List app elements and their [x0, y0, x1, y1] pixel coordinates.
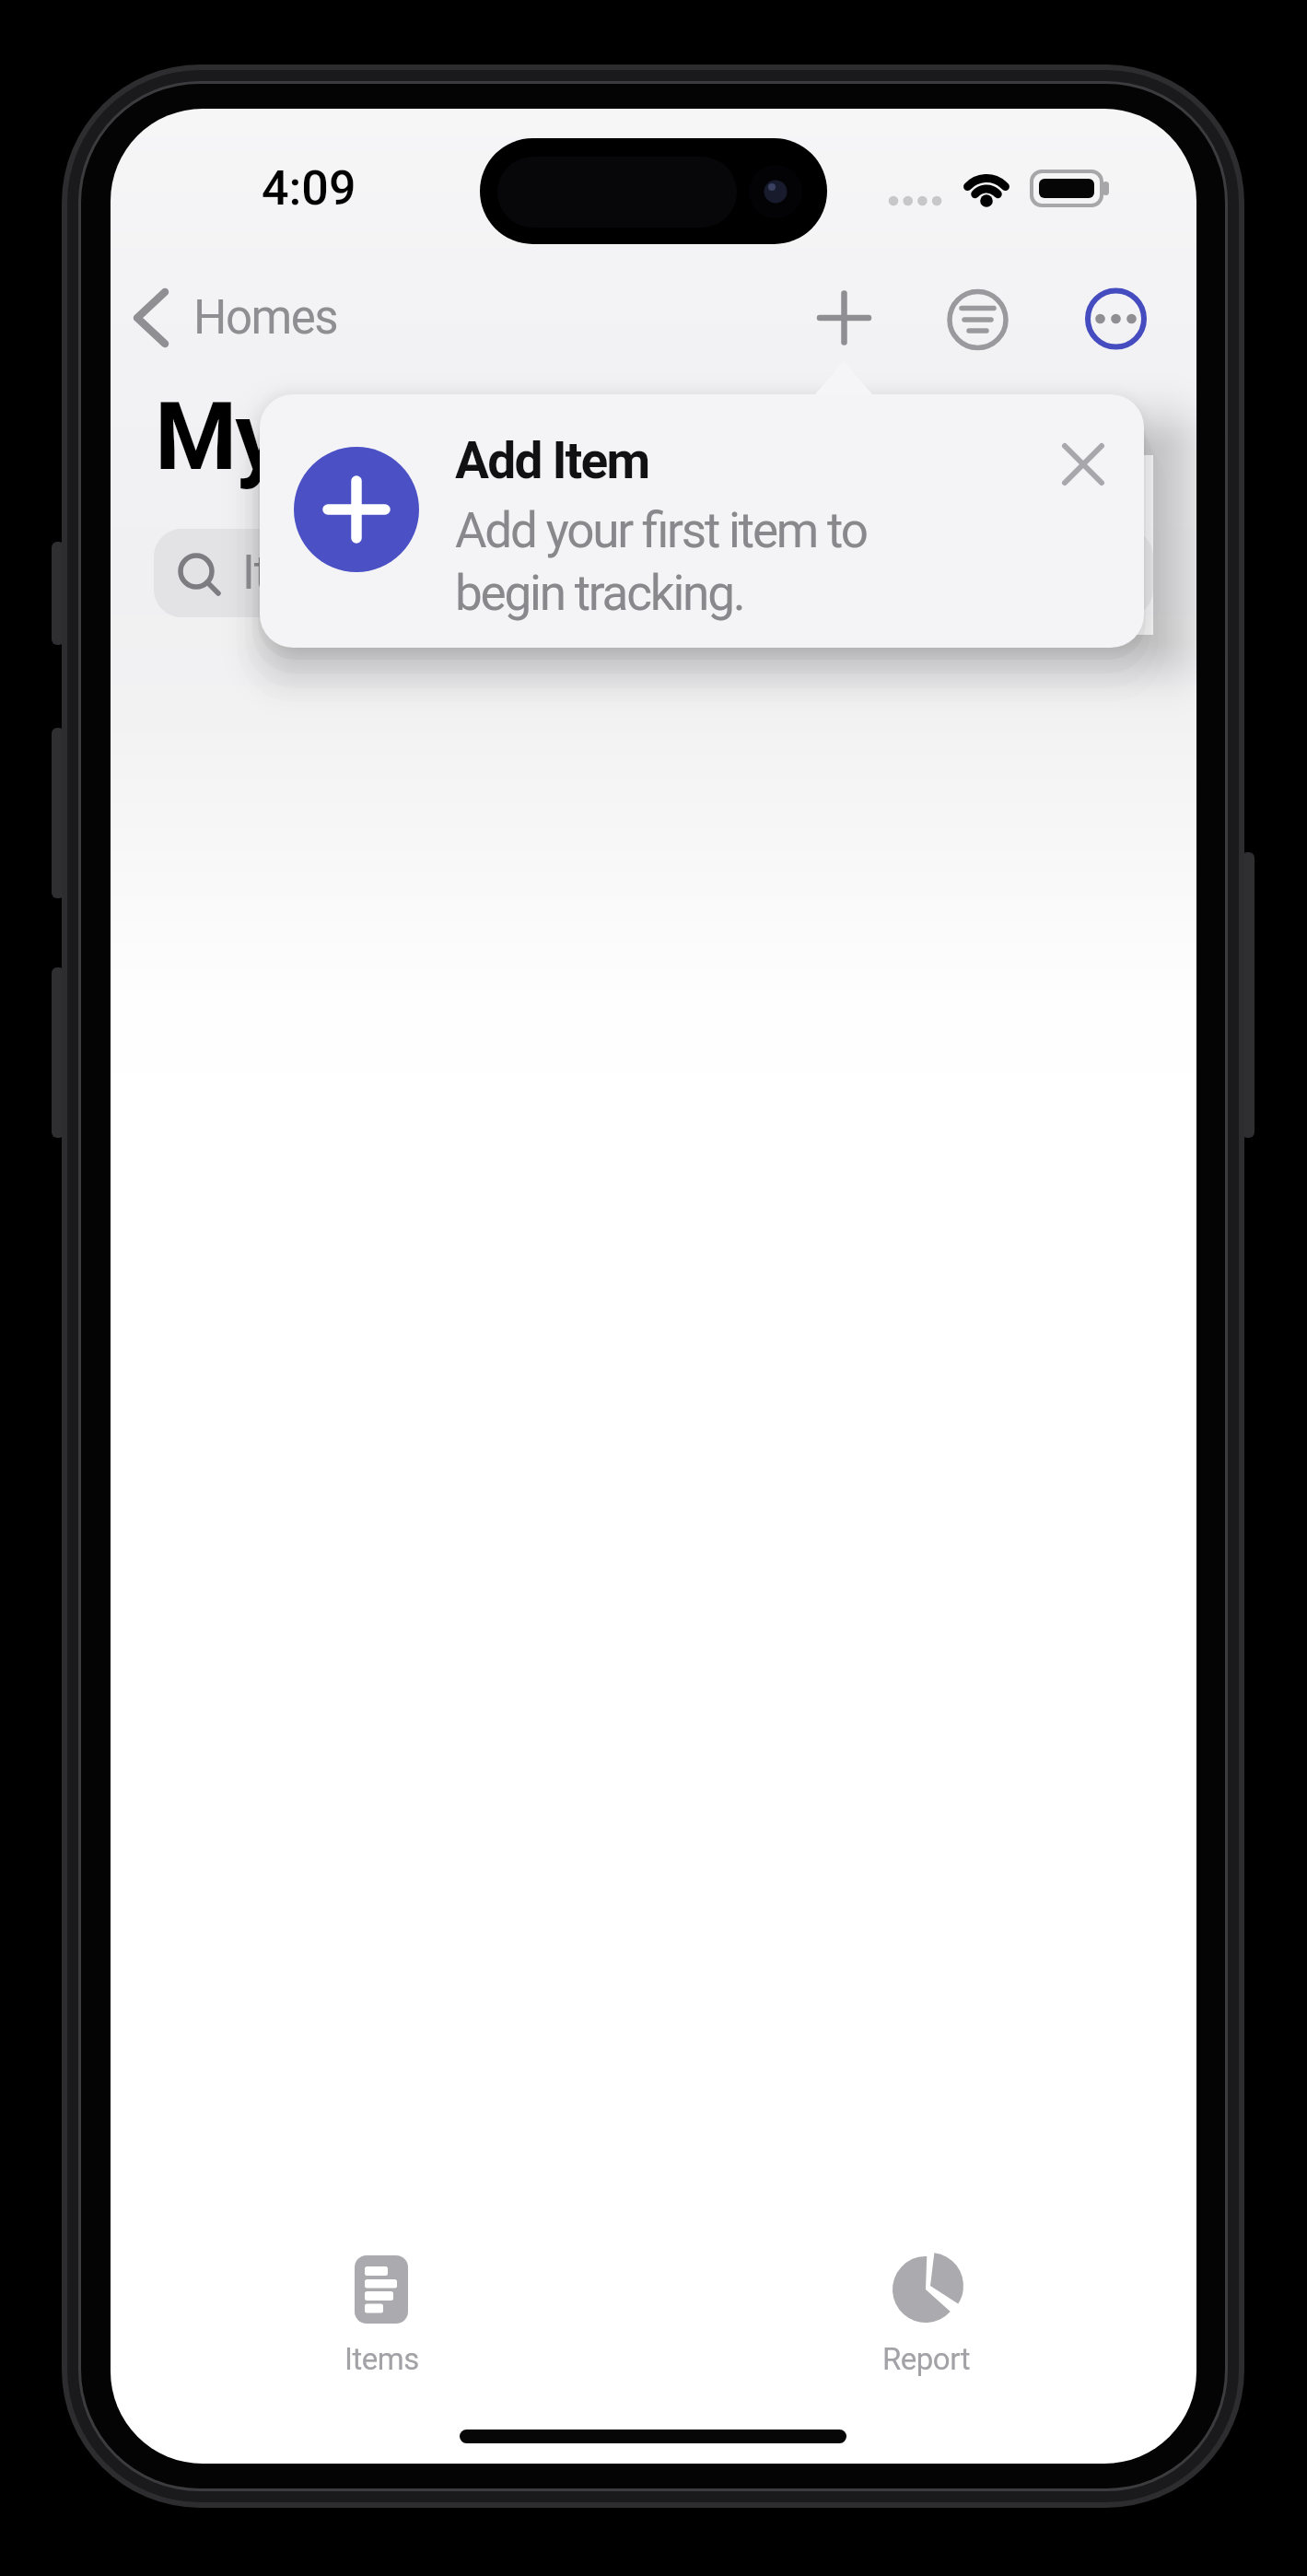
- staticText: 4:09: [262, 160, 356, 216]
- button[interactable]: [260, 394, 1144, 648]
- button[interactable]: [1056, 437, 1111, 492]
- button[interactable]: Items: [308, 2248, 455, 2377]
- staticText: Report: [882, 2341, 970, 2377]
- staticText: Homes: [193, 290, 338, 345]
- button[interactable]: Report: [852, 2248, 999, 2377]
- staticText: Items: [242, 545, 356, 601]
- staticText: My Home: [155, 381, 547, 492]
- button[interactable]: [1080, 284, 1151, 355]
- button[interactable]: [809, 283, 880, 354]
- button[interactable]: Items: [154, 529, 1153, 617]
- staticText: Add Item: [455, 431, 649, 490]
- staticText: Items: [344, 2341, 419, 2377]
- button[interactable]: Homes: [124, 281, 355, 355]
- staticText: Add your first item to begin tracking.: [455, 502, 867, 622]
- button[interactable]: [942, 285, 1013, 356]
